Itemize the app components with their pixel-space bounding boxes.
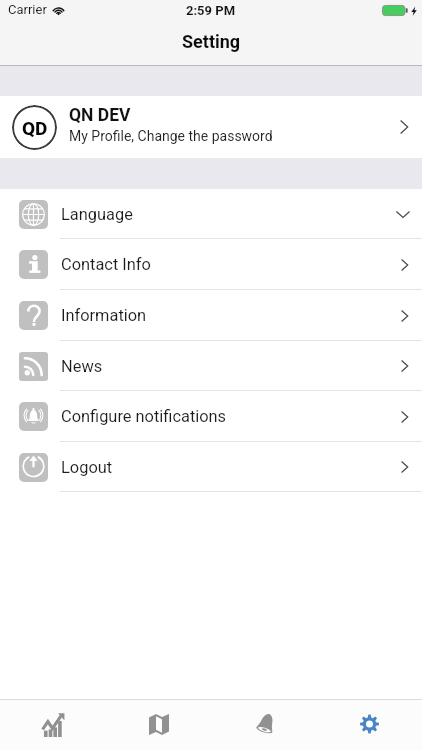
staticText: Language bbox=[61, 205, 394, 224]
staticText: Configure notifications bbox=[61, 407, 401, 426]
staticText: Logout bbox=[61, 458, 401, 477]
button[interactable]: Map bbox=[105, 700, 210, 750]
staticText: QN DEV bbox=[69, 105, 131, 126]
button[interactable]: Configure notifications bbox=[0, 391, 422, 442]
staticText: 2:59 PM bbox=[186, 3, 236, 18]
button[interactable]: Settings bbox=[316, 700, 422, 750]
staticText: News bbox=[61, 357, 401, 376]
staticText: Carrier bbox=[8, 2, 47, 17]
staticText: QD bbox=[22, 117, 48, 139]
staticText: My Profile, Change the password bbox=[69, 128, 273, 144]
staticText: Setting bbox=[182, 31, 241, 52]
button[interactable]: Contact Info bbox=[0, 239, 422, 290]
staticText: Contact Info bbox=[61, 255, 401, 274]
staticText: Information bbox=[61, 306, 401, 325]
button[interactable]: Notifications bbox=[210, 700, 316, 750]
button[interactable]: Statistics bbox=[0, 700, 105, 750]
button[interactable]: News bbox=[0, 341, 422, 391]
button[interactable]: Language bbox=[0, 189, 422, 239]
button[interactable]: QD bbox=[0, 96, 422, 158]
button[interactable]: Information bbox=[0, 290, 422, 341]
button[interactable]: Logout bbox=[0, 442, 422, 492]
